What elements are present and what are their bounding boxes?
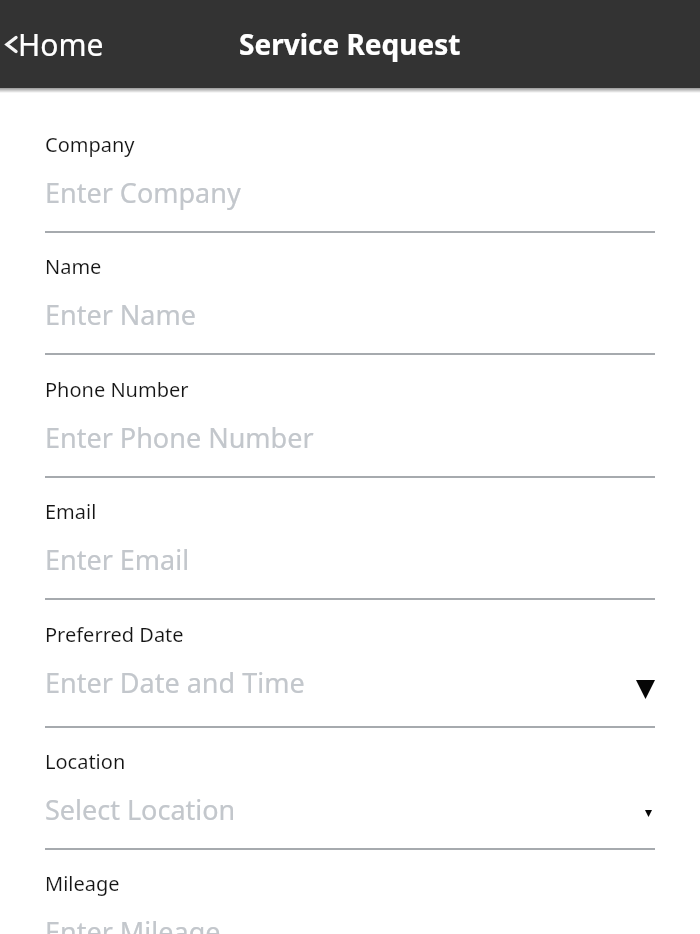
staticText: Enter Phone Number	[45, 419, 314, 456]
staticText: Mileage	[45, 870, 120, 897]
button[interactable]: Email	[45, 498, 655, 600]
button[interactable]: Mileage	[45, 870, 655, 934]
staticText: Enter Name	[45, 296, 196, 333]
staticText: Enter Mileage	[45, 913, 221, 934]
button[interactable]: Phone Number	[45, 376, 655, 478]
staticText: Email	[45, 498, 97, 525]
staticText: Enter Email	[45, 541, 190, 578]
staticText: Service Request	[239, 25, 461, 63]
staticText: Name	[45, 253, 102, 280]
staticText: Enter Company	[45, 174, 241, 211]
button[interactable]: Preferred Date	[45, 621, 655, 728]
staticText: Preferred Date	[45, 621, 184, 648]
staticText: Phone Number	[45, 376, 189, 403]
staticText: Location	[45, 748, 126, 775]
staticText: Company	[45, 131, 135, 158]
button[interactable]: Home	[5, 24, 104, 65]
staticText: Enter Date and Time	[45, 664, 305, 701]
button[interactable]: Company	[45, 131, 655, 233]
staticText: Select Location	[45, 791, 236, 828]
button[interactable]: Location	[45, 748, 655, 850]
staticText: Home	[18, 24, 104, 65]
button[interactable]: Name	[45, 253, 655, 355]
